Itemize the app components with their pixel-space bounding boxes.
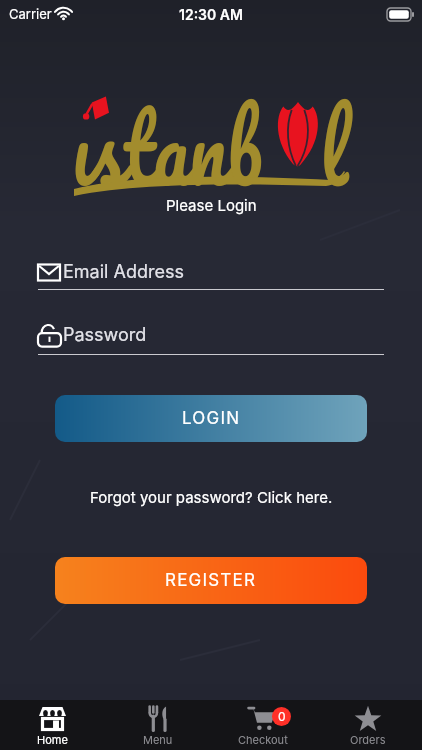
button[interactable]: LOGIN xyxy=(55,395,367,442)
staticText: 0 xyxy=(278,709,286,724)
staticText: Menu xyxy=(143,733,173,746)
staticText: 12:30 AM xyxy=(179,6,243,23)
button[interactable]: Forgot your password? Click here. xyxy=(0,488,422,506)
button[interactable]: Email Address xyxy=(38,261,384,290)
staticText: Checkout xyxy=(238,733,288,746)
button[interactable]: REGISTER xyxy=(55,557,367,604)
button[interactable]: Orders xyxy=(315,700,420,750)
staticText: Carrier xyxy=(9,6,52,22)
staticText: Please Login xyxy=(166,196,257,214)
staticText: Forgot your password? Click here. xyxy=(90,488,333,506)
button[interactable]: Menu xyxy=(105,700,210,750)
staticText: Home xyxy=(37,733,68,746)
staticText: Orders xyxy=(350,733,386,746)
button[interactable]: Home xyxy=(0,700,105,750)
button[interactable]: 0 xyxy=(210,700,315,750)
staticText: LOGIN xyxy=(182,408,241,429)
staticText: Email Address xyxy=(63,261,184,283)
staticText: ıstanb xyxy=(72,65,263,228)
staticText: REGISTER xyxy=(165,570,257,591)
button[interactable]: Password xyxy=(38,324,384,355)
staticText: Password xyxy=(63,324,147,346)
staticText: l xyxy=(320,65,348,228)
